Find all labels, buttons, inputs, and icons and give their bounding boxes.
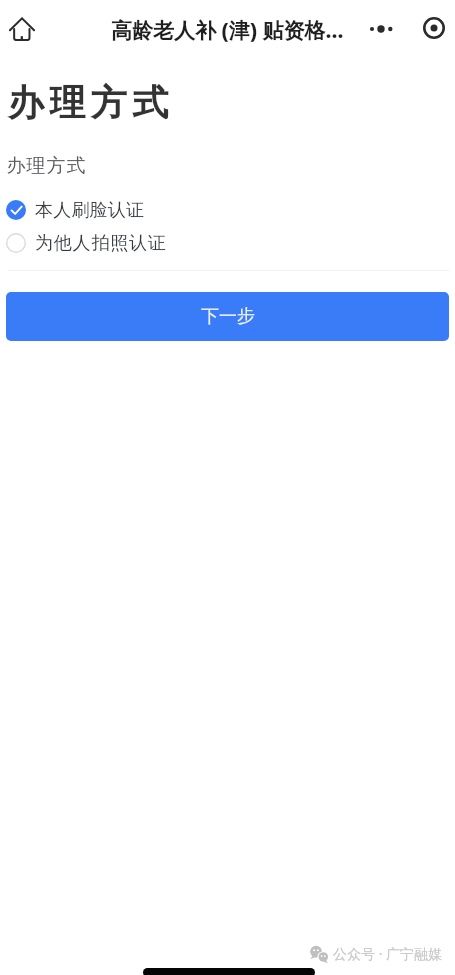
staticText: 高龄老人补 (津) 贴资格... [111, 16, 356, 45]
staticText: 为他人拍照认证 [35, 232, 167, 255]
button[interactable]: Home [2, 9, 42, 49]
button[interactable]: 为他人拍照认证 [0, 227, 455, 258]
staticText: 公众号 · 广宁融媒 [333, 944, 443, 963]
staticText: 本人刷脸认证 [35, 199, 145, 222]
staticText: 办理方式 [6, 154, 86, 178]
button[interactable]: Close [413, 7, 454, 48]
button[interactable]: More options [360, 8, 401, 49]
staticText: 办理方式 [5, 80, 171, 125]
button[interactable]: 下一步 [6, 292, 449, 341]
staticText: 下一步 [201, 305, 255, 328]
button[interactable]: 本人刷脸认证 [0, 194, 455, 225]
